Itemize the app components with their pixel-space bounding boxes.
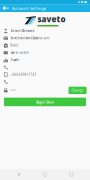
staticText: •••••• (10, 89, 16, 92)
button[interactable]: Back (10, 169, 26, 180)
staticText: saveto (37, 14, 65, 24)
button[interactable] (0, 64, 90, 71)
button[interactable]: ahmedmohamed@saveto.com (0, 34, 90, 42)
button[interactable]: +966509811747 (0, 71, 90, 78)
button[interactable]: Change (68, 87, 86, 94)
button[interactable]: Ahmed Mohamed (0, 27, 90, 34)
staticText: Sign Out (36, 99, 54, 104)
staticText: Account Settings (12, 5, 46, 11)
button[interactable]: SaveTo credits (0, 49, 90, 56)
button[interactable]: Back (0, 4, 12, 12)
button[interactable]: Riyadh (0, 56, 90, 64)
staticText: ahmedmohamed@saveto.com (10, 36, 48, 40)
button[interactable]: Rider (0, 42, 90, 49)
button[interactable]: Recents (63, 169, 79, 180)
button[interactable]: Sign Out (4, 98, 86, 106)
staticText: +966509811747 (10, 73, 36, 76)
staticText: Riyadh (10, 58, 19, 62)
staticText: Ahmed Mohamed (10, 29, 34, 33)
button[interactable] (0, 78, 90, 86)
staticText: SaveTo credits (10, 51, 28, 54)
staticText: Rider (10, 44, 18, 47)
button[interactable]: Home (37, 169, 53, 180)
staticText: Change (71, 89, 83, 92)
